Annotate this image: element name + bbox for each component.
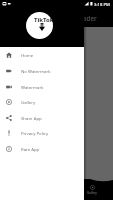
- button[interactable]: Rate App: [0, 141, 84, 157]
- staticText: Watermark: [21, 84, 44, 90]
- button[interactable]: Watermark: [0, 79, 84, 95]
- button[interactable]: No Watermark: [0, 63, 84, 79]
- staticText: Share App: [21, 115, 42, 121]
- staticText: 3:18 PM: [94, 2, 110, 8]
- staticText: Home: [21, 52, 34, 58]
- staticText: No Watermark: [21, 68, 51, 74]
- staticText: Gallery: [87, 191, 97, 195]
- button[interactable]: Privacy Policy: [0, 125, 84, 141]
- staticText: TikTok Downloader: [40, 14, 97, 22]
- staticText: TikTok: [34, 16, 53, 24]
- staticText: Privacy Policy: [21, 130, 49, 136]
- staticText: Rate App: [21, 146, 40, 152]
- button[interactable]: Gallery tab: [87, 185, 97, 195]
- staticText: Gallery: [21, 99, 36, 105]
- button[interactable]: Home: [0, 47, 84, 63]
- button[interactable]: Share App: [0, 110, 84, 126]
- button[interactable]: Gallery: [0, 94, 84, 110]
